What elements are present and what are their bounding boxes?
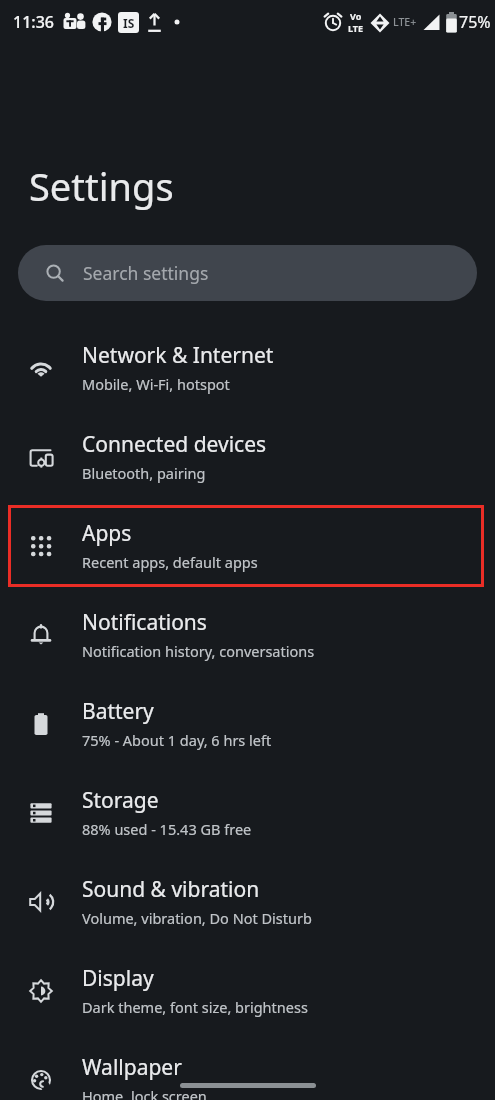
staticText: Storage bbox=[82, 786, 159, 815]
staticText: IS bbox=[123, 15, 135, 31]
staticText: Recent apps, default apps bbox=[82, 552, 258, 572]
staticText: Dark theme, font size, brightness bbox=[82, 997, 308, 1017]
staticText: Settings bbox=[29, 160, 174, 212]
button[interactable]: Wallpaper bbox=[0, 1035, 495, 1100]
staticText: Wallpaper bbox=[82, 1053, 182, 1082]
staticText: Home, lock screen bbox=[82, 1086, 207, 1100]
button[interactable]: Search settings bbox=[18, 245, 477, 301]
staticText: Display bbox=[82, 964, 154, 993]
staticText: 11:36 bbox=[13, 11, 54, 33]
button[interactable]: Sound & vibration bbox=[0, 857, 495, 946]
button[interactable]: Display bbox=[0, 946, 495, 1035]
staticText: 88% used - 15.43 GB free bbox=[82, 819, 252, 839]
staticText: Volume, vibration, Do Not Disturb bbox=[82, 908, 312, 928]
staticText: Bluetooth, pairing bbox=[82, 463, 206, 483]
staticText: Apps bbox=[82, 519, 132, 548]
staticText: Sound & vibration bbox=[82, 875, 260, 904]
button[interactable]: Storage bbox=[0, 768, 495, 857]
button[interactable]: Connected devices bbox=[0, 412, 495, 501]
staticText: LTE+ bbox=[393, 15, 417, 29]
staticText: Notification history, conversations bbox=[82, 641, 315, 661]
staticText: 75% bbox=[459, 11, 491, 33]
button[interactable]: Network & Internet bbox=[0, 323, 495, 412]
staticText: 75% - About 1 day, 6 hrs left bbox=[82, 730, 272, 750]
staticText: Battery bbox=[82, 697, 154, 726]
staticText: Search settings bbox=[83, 261, 209, 285]
staticText: LTE bbox=[348, 22, 364, 34]
button[interactable]: Battery bbox=[0, 679, 495, 768]
staticText: Connected devices bbox=[82, 430, 267, 459]
button[interactable]: Apps bbox=[0, 501, 495, 590]
staticText: Notifications bbox=[82, 608, 207, 637]
staticText: Mobile, Wi-Fi, hotspot bbox=[82, 374, 230, 394]
staticText: Vo bbox=[350, 10, 362, 22]
staticText: Network & Internet bbox=[82, 341, 274, 370]
button[interactable]: Notifications bbox=[0, 590, 495, 679]
